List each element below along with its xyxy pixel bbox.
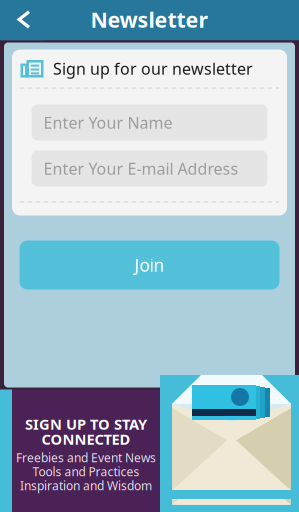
staticText: SIGN UP TO STAY [25,414,147,434]
staticText: Join [134,253,164,276]
button[interactable]: Join [19,240,279,289]
staticText: Inspiration and Wisdom [20,477,152,493]
button[interactable]: SIGN UP TO STAY [0,389,299,512]
button[interactable]: Enter Your Name [31,104,267,140]
staticText: CONNECTED [41,429,130,449]
staticText: Tools and Practices [32,463,139,479]
button[interactable]: Enter Your E-mail Address [31,150,267,186]
staticText: Freebies and Event News [16,449,156,465]
staticText: Enter Your Name [43,112,172,133]
staticText: Newsletter [90,5,208,34]
staticText: Sign up for our newsletter [53,58,253,79]
staticText: Enter Your E-mail Address [43,158,238,179]
button[interactable]: Back [0,0,46,40]
